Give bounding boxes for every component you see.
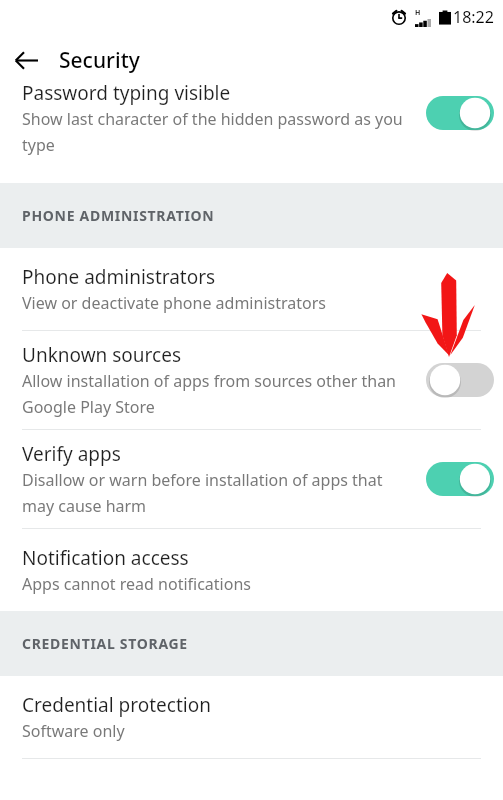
button[interactable]: Verify apps — [0, 430, 503, 528]
staticText: 18:22 — [453, 6, 494, 28]
staticText: Notification access — [22, 545, 189, 571]
staticText: Phone administrators — [22, 264, 216, 290]
staticText: Apps cannot read notifications — [22, 573, 251, 595]
staticText: Security — [59, 46, 140, 75]
staticText: Allow installation of apps from sources … — [22, 370, 414, 418]
button[interactable]: Notification access — [0, 529, 503, 611]
staticText: H — [415, 8, 421, 18]
staticText: Software only — [22, 720, 125, 742]
button[interactable]: Phone administrators — [0, 248, 503, 330]
staticText: Password typing visible — [22, 80, 231, 106]
staticText: PHONE ADMINISTRATION — [22, 206, 215, 225]
button[interactable] — [420, 357, 500, 403]
button[interactable]: Back — [0, 34, 52, 86]
button[interactable] — [420, 90, 500, 136]
button[interactable]: Password typing visible — [0, 86, 503, 162]
button[interactable]: Credential protection — [0, 676, 503, 758]
staticText: Disallow or warn before installation of … — [22, 469, 414, 517]
staticText: Show last character of the hidden passwo… — [22, 108, 414, 156]
staticText: Credential protection — [22, 692, 211, 718]
staticText: CREDENTIAL STORAGE — [22, 634, 188, 653]
button[interactable] — [420, 456, 500, 502]
staticText: View or deactivate phone administrators — [22, 292, 326, 314]
staticText: Unknown sources — [22, 342, 181, 368]
staticText: Verify apps — [22, 441, 121, 467]
button[interactable]: Unknown sources — [0, 331, 503, 429]
